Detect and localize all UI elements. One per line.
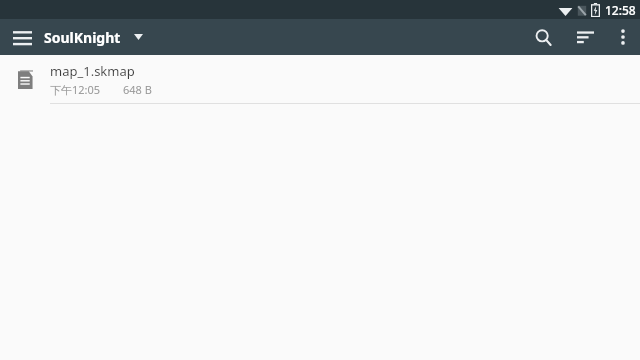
button[interactable]: Search bbox=[522, 19, 564, 55]
staticText: 下午12:05 bbox=[50, 82, 101, 97]
staticText: 12:58 bbox=[605, 2, 636, 18]
button[interactable]: map_1.skmap bbox=[0, 55, 640, 104]
staticText: map_1.skmap bbox=[50, 62, 135, 80]
button[interactable]: Open navigation drawer bbox=[0, 19, 44, 55]
staticText: 648 B bbox=[123, 82, 152, 97]
button[interactable]: SoulKnight bbox=[44, 28, 121, 47]
button[interactable]: More options bbox=[606, 19, 640, 55]
button[interactable]: Sort bbox=[564, 19, 606, 55]
button[interactable]: Change directory bbox=[121, 19, 155, 55]
